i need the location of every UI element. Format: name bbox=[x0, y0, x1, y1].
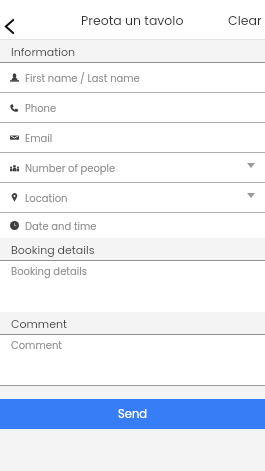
button[interactable]: Date and time bbox=[0, 213, 265, 238]
staticText: Clear bbox=[228, 12, 262, 29]
staticText: Preota un tavolo bbox=[81, 12, 184, 29]
staticText: Date and time bbox=[25, 219, 97, 233]
staticText: Location bbox=[25, 191, 68, 205]
staticText: Booking details bbox=[11, 264, 87, 278]
staticText: Phone bbox=[25, 101, 57, 115]
button[interactable]: Number of people bbox=[0, 153, 265, 182]
button[interactable]: Back bbox=[0, 0, 22, 40]
button[interactable]: Email bbox=[0, 123, 265, 152]
button[interactable]: Clear bbox=[219, 2, 265, 38]
staticText: Send bbox=[118, 406, 148, 422]
staticText: Booking details bbox=[11, 242, 95, 257]
button[interactable]: Phone bbox=[0, 93, 265, 122]
staticText: First name / Last name bbox=[25, 71, 140, 85]
staticText: Comment bbox=[11, 316, 68, 331]
button[interactable]: Send bbox=[0, 399, 265, 429]
staticText: Comment bbox=[11, 338, 62, 352]
staticText: Email bbox=[25, 131, 53, 145]
button[interactable]: Booking details bbox=[0, 261, 265, 312]
staticText: Information bbox=[11, 44, 76, 59]
button[interactable]: Location bbox=[0, 183, 265, 212]
staticText: Number of people bbox=[25, 161, 116, 175]
button[interactable]: First name / Last name bbox=[0, 63, 265, 92]
button[interactable]: Comment bbox=[0, 335, 265, 385]
